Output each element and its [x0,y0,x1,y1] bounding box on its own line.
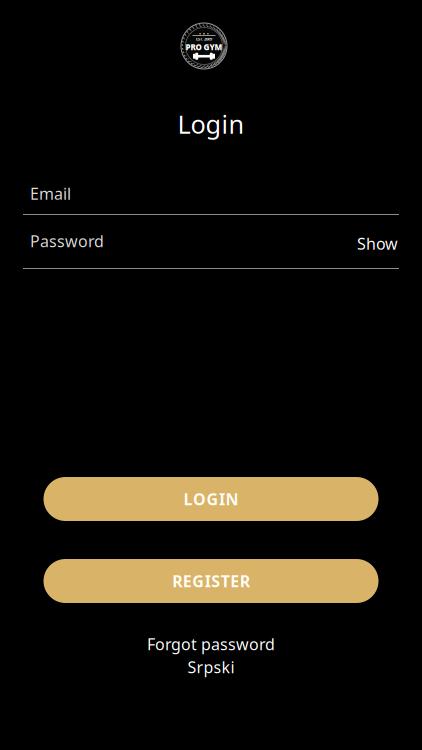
staticText: LOGIN [183,488,238,510]
button[interactable]: Password [23,224,399,258]
staticText: PRO GYM [185,42,222,52]
button[interactable]: LOGIN [43,477,378,521]
staticText: Password [30,230,104,252]
staticText: Login [177,107,244,141]
button[interactable]: Show [336,230,398,256]
button[interactable]: Srpski [111,657,311,677]
button[interactable]: Email [23,176,399,210]
staticText: REGISTER [172,570,250,592]
staticText: Forgot password [147,633,275,655]
button[interactable]: REGISTER [43,559,378,603]
staticText: Srpski [187,656,234,678]
staticText: Show [357,233,398,254]
button[interactable]: Forgot password [111,634,311,654]
staticText: Email [30,183,71,204]
staticText: EST. 2009 [196,36,212,42]
